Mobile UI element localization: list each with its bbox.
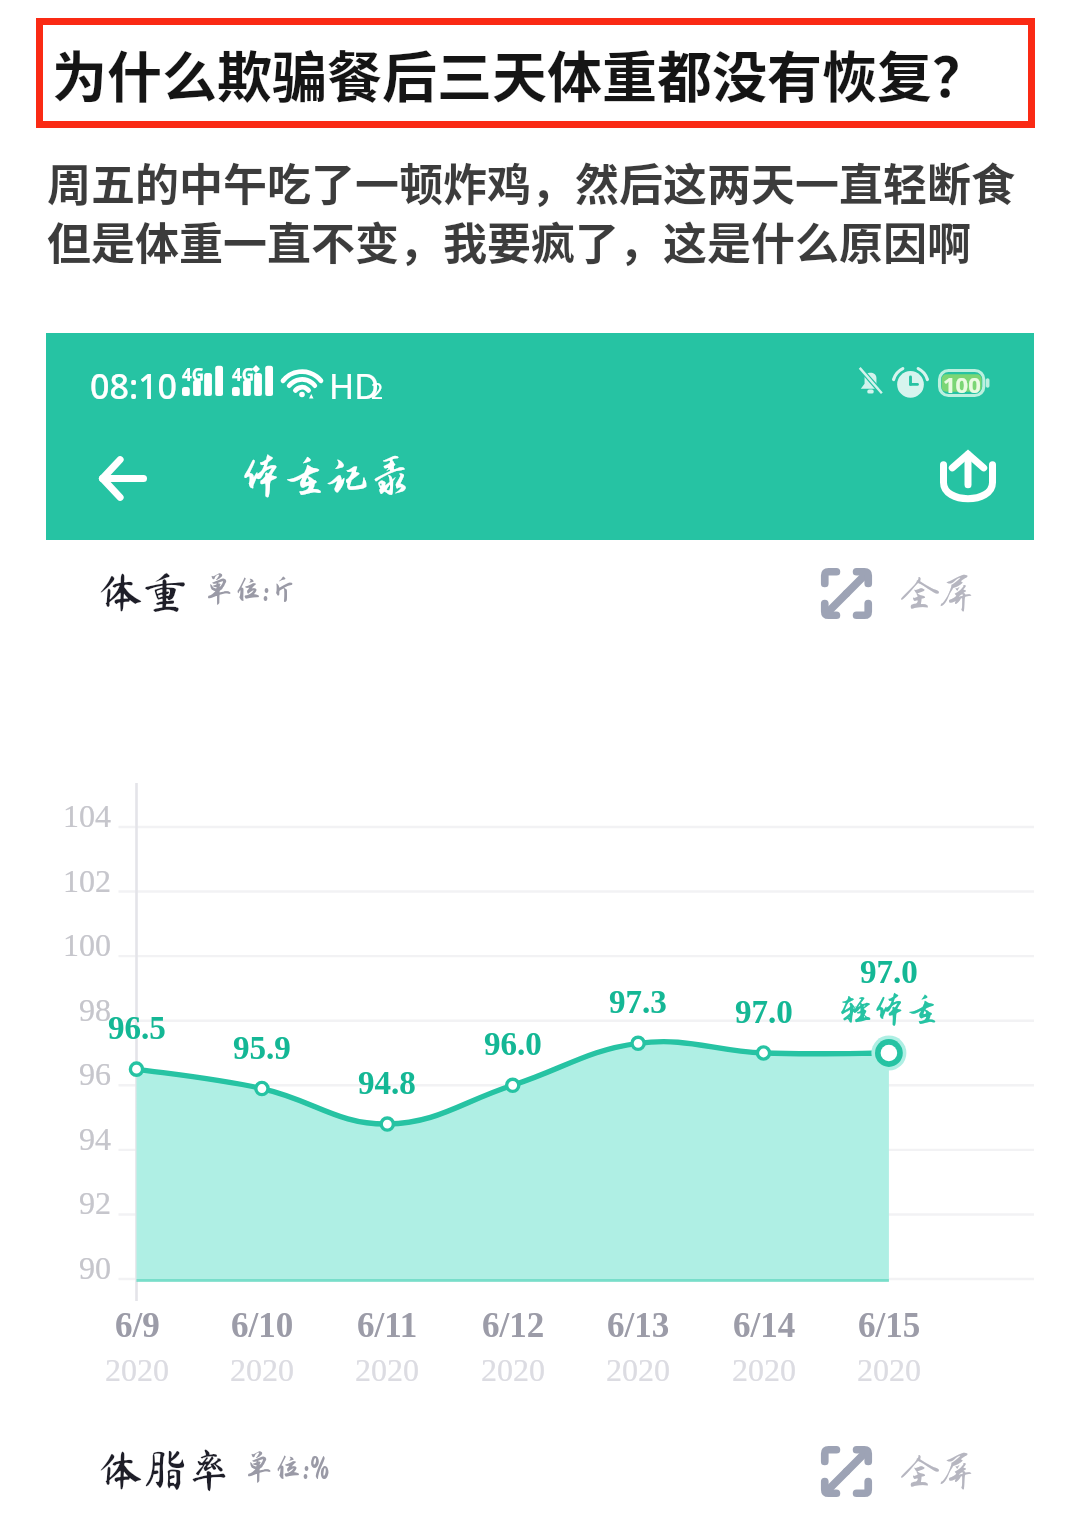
staticText: 08:10 [90, 363, 178, 409]
staticText: 92 [79, 1185, 111, 1220]
staticText: 2020 [732, 1352, 796, 1387]
staticText: 全屏 [902, 574, 974, 614]
staticText: 98 [79, 992, 111, 1027]
staticText: 单位:% [245, 1452, 330, 1484]
staticText: 2020 [355, 1352, 419, 1387]
staticText: 6/9 [115, 1306, 160, 1345]
staticText: 97.3 [609, 984, 667, 1021]
staticText: 90 [79, 1250, 111, 1285]
staticText: 6/12 [482, 1306, 545, 1345]
staticText: 全屏 [902, 1452, 974, 1492]
staticText: 100 [943, 369, 981, 397]
staticText: 2020 [606, 1352, 670, 1387]
staticText: 96.0 [484, 1026, 542, 1063]
staticText: 2 [371, 377, 384, 406]
staticText: 但是体重一直不变，我要疯了，这是什么原因啊 [47, 209, 971, 273]
staticText: 为什么欺骗餐后三天体重都没有恢复？ [52, 33, 988, 113]
staticText: 97.0 [735, 994, 793, 1031]
button[interactable]: Back [63, 423, 183, 534]
staticText: 轻体重 [839, 991, 939, 1028]
staticText: 4G [232, 363, 255, 386]
staticText: 2020 [105, 1352, 169, 1387]
staticText: 104 [63, 798, 111, 833]
staticText: 6/11 [357, 1306, 418, 1345]
staticText: 4G [182, 363, 205, 386]
staticText: 95.9 [233, 1030, 291, 1067]
staticText: 96 [79, 1056, 111, 1091]
staticText: 100 [63, 927, 111, 962]
staticText: 97.0 [860, 954, 918, 991]
staticText: 2020 [481, 1352, 545, 1387]
staticText: 周五的中午吃了一顿炸鸡，然后这两天一直轻断食 [47, 150, 1015, 214]
staticText: 体重 [99, 569, 187, 613]
staticText: 6/15 [858, 1306, 921, 1345]
button[interactable]: 全屏 [820, 546, 974, 640]
button[interactable]: Share [908, 420, 1028, 531]
staticText: 6/10 [231, 1306, 294, 1345]
staticText: 2020 [857, 1352, 921, 1387]
button[interactable]: 全屏 [820, 1424, 974, 1518]
button[interactable]: 为什么欺骗餐后三天体重都没有恢复？ [36, 18, 1035, 128]
staticText: 2020 [230, 1352, 294, 1387]
staticText: 96.5 [108, 1010, 166, 1047]
staticText: 102 [63, 863, 111, 898]
staticText: 94.8 [358, 1065, 416, 1102]
staticText: 体重记录 [239, 453, 412, 501]
staticText: 6/13 [607, 1306, 670, 1345]
staticText: 体脂率 [99, 1447, 231, 1491]
staticText: 6/14 [733, 1306, 796, 1345]
staticText: 单位:斤 [205, 574, 299, 606]
staticText: HD [329, 363, 380, 409]
staticText: 94 [79, 1121, 111, 1156]
